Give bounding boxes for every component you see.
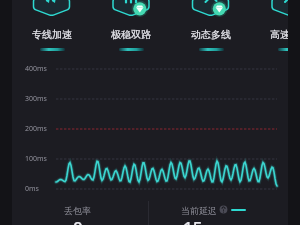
staticText: 动态多线 xyxy=(191,28,231,41)
staticText: 极稳双路 xyxy=(111,28,151,41)
staticText: 15 xyxy=(183,216,203,225)
button[interactable]: 丢包率 xyxy=(12,197,148,225)
button[interactable]: 动态多线 xyxy=(181,0,241,53)
staticText: 专线加速 xyxy=(32,28,72,41)
button[interactable]: Help xyxy=(219,205,228,214)
staticText: 300ms xyxy=(25,94,47,104)
button[interactable]: 极稳双路 xyxy=(101,0,161,53)
staticText: 200ms xyxy=(25,124,47,134)
staticText: 丢包率 xyxy=(64,205,91,216)
staticText: 0 xyxy=(73,216,83,225)
staticText: 0ms xyxy=(25,184,39,194)
button[interactable]: 高速专线 xyxy=(260,0,288,53)
staticText: 400ms xyxy=(25,64,47,74)
button[interactable]: 专线加速 xyxy=(22,0,82,53)
button[interactable]: 当前延迟 xyxy=(149,197,288,225)
staticText: 当前延迟 xyxy=(181,205,217,216)
staticText: 高速专线 xyxy=(270,28,288,41)
staticText: 100ms xyxy=(25,154,47,164)
